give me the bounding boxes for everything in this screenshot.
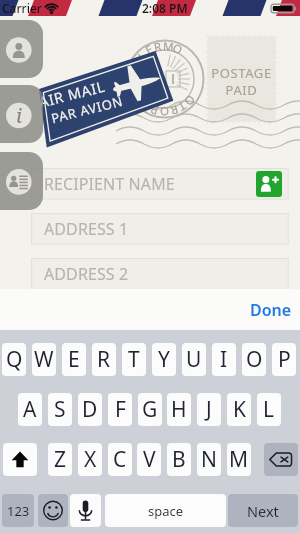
button[interactable]: U <box>182 343 206 376</box>
staticText: E <box>142 41 156 58</box>
staticText: ADDRESS 1 <box>44 218 129 240</box>
staticText: S <box>54 395 66 424</box>
staticText: L <box>134 47 150 64</box>
staticText: 2:08 PM <box>142 0 188 16</box>
staticText: O <box>170 40 184 58</box>
button[interactable]: O <box>242 343 266 376</box>
staticText: J <box>206 395 212 424</box>
button[interactable]: Q <box>2 343 26 376</box>
button[interactable]: S <box>48 393 72 426</box>
button[interactable]: C <box>108 443 132 476</box>
button[interactable]: P <box>272 343 296 376</box>
staticText: M <box>229 445 249 474</box>
staticText: W <box>34 345 54 374</box>
staticText: B <box>172 445 186 474</box>
staticText: P <box>278 345 291 374</box>
staticText: O <box>246 345 263 374</box>
staticText: K <box>233 395 246 424</box>
staticText: U <box>186 345 202 374</box>
staticText: G <box>142 395 158 424</box>
button[interactable]: X <box>78 443 102 476</box>
staticText: E <box>68 345 80 374</box>
button[interactable]: E <box>62 343 86 376</box>
button[interactable]: Contacts <box>0 152 43 210</box>
button[interactable]: ADDRESS 2 <box>31 258 289 290</box>
staticText: I <box>220 345 228 374</box>
button[interactable]: Emoji <box>38 494 68 527</box>
button[interactable]: Y <box>152 343 176 376</box>
button[interactable]: ADDRESS 1 <box>31 213 289 245</box>
button[interactable]: 123 <box>2 494 34 527</box>
staticText: C <box>113 445 127 474</box>
button[interactable]: Dictate <box>70 494 101 527</box>
button[interactable]: K <box>227 393 251 426</box>
staticText: R <box>97 345 111 374</box>
staticText: N <box>201 445 217 474</box>
staticText: Done <box>250 299 292 321</box>
button[interactable]: M <box>227 443 251 476</box>
button[interactable]: RECIPIENT NAME <box>31 168 289 200</box>
staticText: 123 <box>7 502 30 520</box>
button[interactable]: J <box>197 393 221 426</box>
staticText: RECIPIENT NAME <box>44 173 175 195</box>
button[interactable]: I <box>212 343 236 376</box>
button[interactable]: R <box>92 343 116 376</box>
button[interactable]: V <box>137 443 161 476</box>
button[interactable]: H <box>167 393 191 426</box>
staticText: O <box>160 103 169 119</box>
staticText: POSTAGE PAID <box>207 64 276 99</box>
button[interactable]: Shift <box>3 443 37 476</box>
staticText: T <box>174 98 189 115</box>
button[interactable]: Done <box>242 293 300 327</box>
staticText: PAR AVION <box>49 92 125 127</box>
staticText: Q <box>6 345 23 374</box>
staticText: A <box>127 56 145 70</box>
button[interactable]: G <box>138 393 162 426</box>
button[interactable]: D <box>78 393 102 426</box>
staticText: R <box>152 38 164 56</box>
staticText: R <box>168 101 180 119</box>
staticText: i <box>16 102 23 128</box>
button[interactable]: L <box>257 393 281 426</box>
button[interactable]: T <box>122 343 146 376</box>
staticText: O <box>181 92 199 109</box>
staticText: Next <box>247 501 279 521</box>
button[interactable]: A <box>18 393 42 426</box>
staticText: D <box>82 395 98 424</box>
button[interactable]: Next <box>228 494 298 527</box>
button[interactable]: Add contact <box>256 171 282 197</box>
staticText: A <box>23 395 37 424</box>
button[interactable]: Sender <box>0 20 43 78</box>
button[interactable]: space <box>105 494 226 527</box>
staticText: Carrier <box>2 0 42 16</box>
staticText: F <box>115 395 126 424</box>
staticText: H <box>171 395 187 424</box>
staticText: T <box>128 345 140 374</box>
staticText: Y <box>158 345 170 374</box>
staticText: Z <box>54 445 67 474</box>
staticText: AIR MAIL <box>37 76 107 112</box>
staticText: P <box>149 101 160 118</box>
staticText: M <box>162 39 175 55</box>
button[interactable]: Z <box>48 443 72 476</box>
staticText: X <box>84 445 97 474</box>
staticText: ADDRESS 2 <box>44 263 129 285</box>
button[interactable]: F <box>108 393 132 426</box>
staticText: V <box>143 445 156 474</box>
button[interactable]: Backspace <box>264 443 298 476</box>
staticText: L <box>263 395 275 424</box>
staticText: space <box>148 502 184 520</box>
button[interactable]: N <box>197 443 221 476</box>
button[interactable]: W <box>32 343 56 376</box>
staticText: P <box>125 66 142 77</box>
button[interactable]: B <box>167 443 191 476</box>
button[interactable]: Information <box>0 85 43 143</box>
